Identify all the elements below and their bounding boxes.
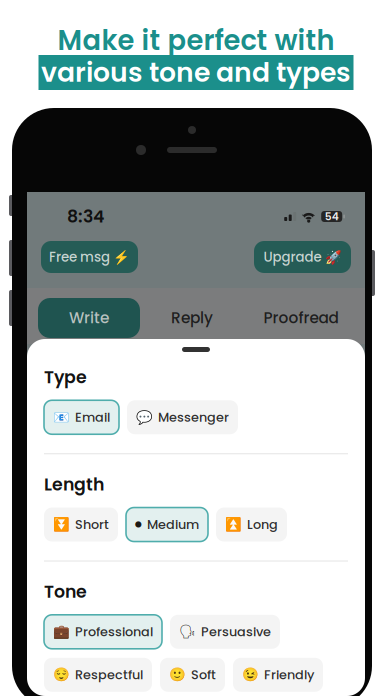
button[interactable]: ⏺ [126, 507, 208, 541]
staticText: 😌 [53, 667, 70, 682]
button[interactable]: Free msg ⚡ [41, 241, 138, 273]
staticText: Persuasive [201, 623, 271, 641]
staticText: Messenger [158, 408, 229, 426]
staticText: Medium [147, 516, 199, 533]
staticText: 🙂 [169, 667, 186, 682]
button[interactable]: ⏬ [44, 507, 118, 541]
button[interactable]: 💼 [44, 615, 162, 649]
button[interactable]: 🙂 [160, 658, 225, 692]
staticText: Long [247, 516, 278, 533]
button[interactable]: ⏫ [216, 507, 287, 541]
staticText: 😉 [242, 667, 259, 682]
button[interactable]: 😌 [44, 658, 152, 692]
staticText: 💼 [53, 624, 70, 639]
staticText: Make it perfect with [57, 21, 334, 60]
button[interactable]: 🗣 [170, 615, 280, 649]
staticText: 54 [325, 209, 339, 224]
staticText: 🗣 [179, 624, 196, 639]
staticText: various tone and types [41, 54, 351, 91]
staticText: Reply [171, 307, 213, 329]
button[interactable]: Upgrade 🚀 [254, 241, 351, 273]
button[interactable]: 😉 [233, 658, 323, 692]
staticText: ⏬ [53, 517, 70, 532]
staticText: 8:34 [67, 204, 104, 229]
staticText: Short [75, 516, 109, 533]
button[interactable]: 📧 [44, 400, 119, 434]
staticText: Email [75, 408, 110, 426]
staticText: Soft [191, 666, 216, 684]
staticText: ⏫ [225, 517, 242, 532]
staticText: Tone [44, 579, 87, 604]
staticText: Write [69, 307, 109, 329]
staticText: Professional [75, 623, 153, 641]
button[interactable]: Proofread [244, 298, 358, 338]
staticText: Friendly [264, 666, 314, 684]
button[interactable]: Reply [140, 298, 244, 338]
staticText: Respectful [75, 666, 143, 684]
button[interactable]: Write [38, 298, 140, 338]
staticText: Free msg ⚡ [49, 248, 130, 266]
button[interactable]: 💬 [127, 400, 238, 434]
staticText: Proofread [263, 307, 338, 329]
staticText: Upgrade 🚀 [263, 248, 341, 266]
staticText: 💬 [136, 410, 153, 425]
staticText: 📧 [53, 410, 70, 425]
staticText: Type [44, 365, 87, 389]
staticText: ⏺ [135, 518, 142, 531]
staticText: Length [44, 472, 104, 497]
